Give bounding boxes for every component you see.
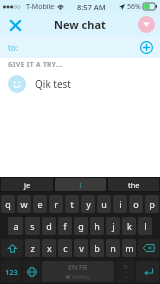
button[interactable]: d [42, 217, 56, 235]
staticText: y [86, 198, 91, 210]
staticText: o [133, 198, 139, 210]
button[interactable]: g [74, 217, 88, 235]
staticText: s [30, 220, 35, 232]
staticText: 8:57 AM [77, 2, 106, 12]
button[interactable]: Send [138, 16, 155, 33]
button[interactable]: p [145, 195, 159, 213]
button[interactable]: t [65, 195, 79, 213]
staticText: ?! [123, 263, 128, 271]
button[interactable]: Close [6, 16, 24, 34]
button[interactable]: Enter [136, 261, 159, 282]
button[interactable]: Shift [1, 239, 23, 257]
staticText: the [128, 180, 140, 190]
button[interactable]: 123 [1, 261, 21, 282]
button[interactable]: j [106, 217, 120, 235]
staticText: n [110, 242, 116, 254]
button[interactable]: b [90, 239, 104, 257]
staticText: x [47, 242, 52, 254]
button[interactable]: k [122, 217, 136, 235]
button[interactable]: n [106, 239, 120, 257]
staticText: GIVE IT A TRY... [8, 60, 63, 69]
staticText: g [78, 220, 84, 232]
button[interactable]: je [1, 178, 53, 191]
staticText: l [144, 220, 147, 232]
staticText: r [54, 198, 58, 210]
button[interactable]: i [113, 195, 127, 213]
staticText: h [94, 220, 100, 232]
button[interactable]: a [8, 217, 23, 235]
staticText: t [70, 198, 74, 210]
button[interactable]: f [58, 217, 72, 235]
staticText: SwiftKey [72, 274, 90, 280]
staticText: f [63, 220, 67, 232]
button[interactable]: Backspace [138, 239, 159, 257]
button[interactable]: h [90, 217, 104, 235]
staticText: w [20, 198, 28, 210]
staticText: d [46, 220, 52, 232]
staticText: I [79, 180, 82, 190]
button[interactable]: Change language [23, 261, 40, 282]
button[interactable]: c [58, 239, 72, 257]
staticText: k [127, 220, 132, 232]
button[interactable]: w [17, 195, 31, 213]
button[interactable]: y [81, 195, 95, 213]
staticText: b [94, 242, 100, 254]
button[interactable]: Symbols [116, 261, 134, 282]
button[interactable]: the [108, 178, 159, 191]
staticText: e [37, 198, 43, 210]
staticText: New chat [54, 17, 106, 32]
staticText: je [24, 180, 31, 190]
button[interactable]: Add contact [139, 40, 154, 55]
button[interactable]: l [138, 217, 152, 235]
staticText: v [79, 242, 84, 254]
staticText: z [30, 242, 35, 254]
staticText: p [149, 198, 155, 210]
staticText: to: [8, 42, 19, 53]
button[interactable]: s [25, 217, 40, 235]
staticText: . [125, 271, 127, 281]
staticText: a [13, 220, 19, 232]
button[interactable]: z [25, 239, 40, 257]
button[interactable]: Space [42, 261, 114, 282]
staticText: Qik test [35, 77, 71, 91]
button[interactable]: r [49, 195, 63, 213]
staticText: 56% [127, 2, 141, 12]
button[interactable]: v [74, 239, 88, 257]
button[interactable]: u [97, 195, 111, 213]
staticText: q [5, 198, 11, 210]
button[interactable]: m [122, 239, 136, 257]
staticText: T-Mobile [26, 2, 55, 12]
staticText: 123 [5, 267, 18, 277]
button[interactable]: Qik test [0, 71, 160, 97]
button[interactable]: o [129, 195, 143, 213]
staticText: u [101, 198, 107, 210]
staticText: m [125, 242, 134, 254]
staticText: i [119, 198, 122, 210]
staticText: EN FR [68, 263, 88, 273]
button[interactable]: q [1, 195, 15, 213]
staticText: c [63, 242, 68, 254]
staticText: j [112, 220, 115, 232]
button[interactable]: e [33, 195, 47, 213]
button[interactable]: I [55, 178, 106, 191]
button[interactable]: x [42, 239, 56, 257]
